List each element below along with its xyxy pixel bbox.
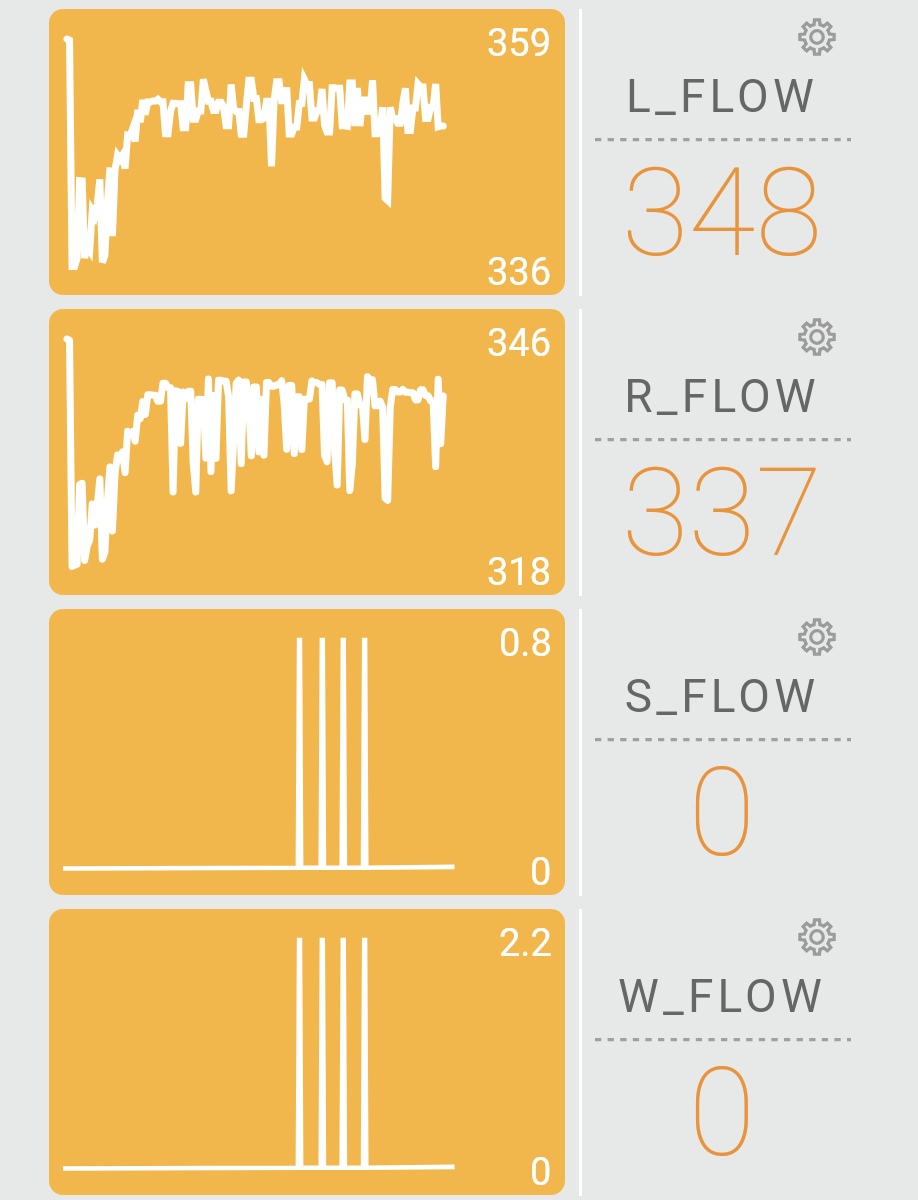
staticText: 336 — [487, 250, 552, 295]
staticText: 346 — [487, 321, 552, 366]
button[interactable]: 359 — [49, 9, 565, 295]
button[interactable] — [590, 658, 854, 888]
button[interactable] — [590, 358, 854, 588]
staticText: 348 — [590, 142, 854, 285]
button[interactable]: R_FLOW settings — [798, 318, 836, 356]
staticText: 318 — [487, 550, 552, 595]
staticText: 0 — [530, 850, 552, 895]
button[interactable]: 0.8 — [49, 609, 565, 895]
button[interactable]: 2.2 — [49, 909, 565, 1195]
staticText: W_FLOW — [590, 969, 854, 1023]
staticText: L_FLOW — [590, 69, 854, 123]
staticText: 0 — [530, 1150, 552, 1195]
staticText: 0 — [590, 742, 854, 885]
button[interactable]: L_FLOW settings — [798, 18, 836, 56]
staticText: 0.8 — [499, 621, 552, 666]
button[interactable]: S_FLOW settings — [798, 618, 836, 656]
button[interactable] — [590, 958, 854, 1188]
staticText: R_FLOW — [590, 369, 854, 423]
button[interactable]: 346 — [49, 309, 565, 595]
staticText: 359 — [487, 21, 552, 66]
staticText: 2.2 — [499, 921, 552, 966]
button[interactable]: W_FLOW settings — [798, 918, 836, 956]
staticText: S_FLOW — [590, 669, 854, 723]
staticText: 337 — [590, 442, 854, 585]
button[interactable] — [590, 58, 854, 288]
staticText: 0 — [590, 1042, 854, 1185]
